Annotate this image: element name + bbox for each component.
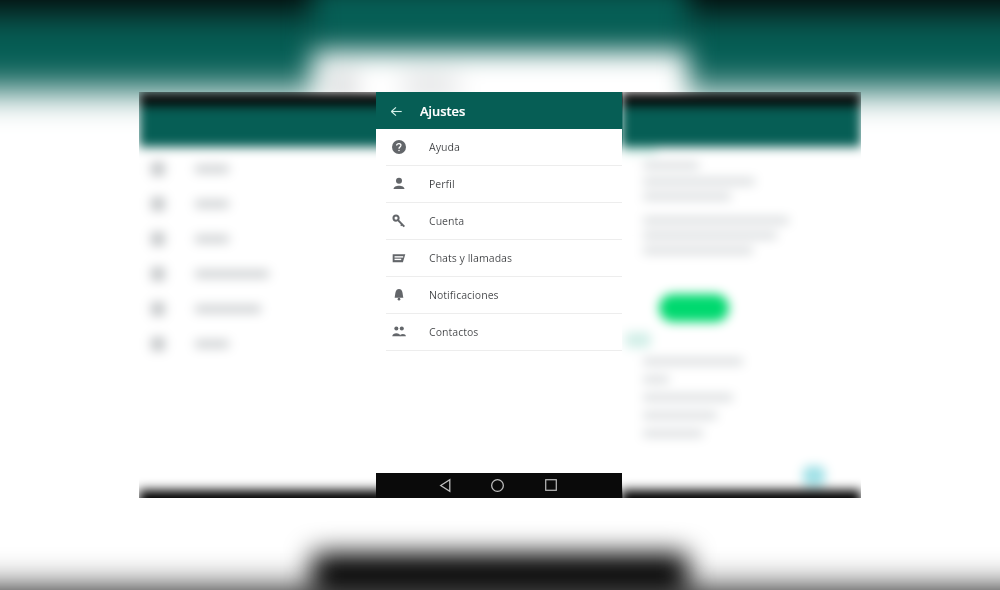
button[interactable]: Perfil: [376, 166, 622, 203]
button[interactable]: Notificaciones: [376, 277, 622, 314]
button[interactable]: Cuenta: [376, 203, 622, 240]
button[interactable]: Home: [485, 473, 509, 497]
staticText: Ayuda: [429, 140, 460, 154]
button[interactable]: Back: [385, 100, 407, 122]
staticText: Cuenta: [429, 214, 465, 228]
button[interactable]: Ayuda: [376, 129, 622, 166]
button[interactable]: Back: [433, 473, 457, 497]
staticText: Notificaciones: [429, 288, 499, 302]
staticText: Chats y llamadas: [429, 251, 513, 265]
staticText: Ajustes: [420, 102, 466, 120]
staticText: Contactos: [429, 325, 479, 339]
button[interactable]: Recents: [539, 473, 563, 497]
staticText: Perfil: [429, 177, 455, 191]
button[interactable]: Contactos: [376, 314, 622, 351]
button[interactable]: Chats y llamadas: [376, 240, 622, 277]
